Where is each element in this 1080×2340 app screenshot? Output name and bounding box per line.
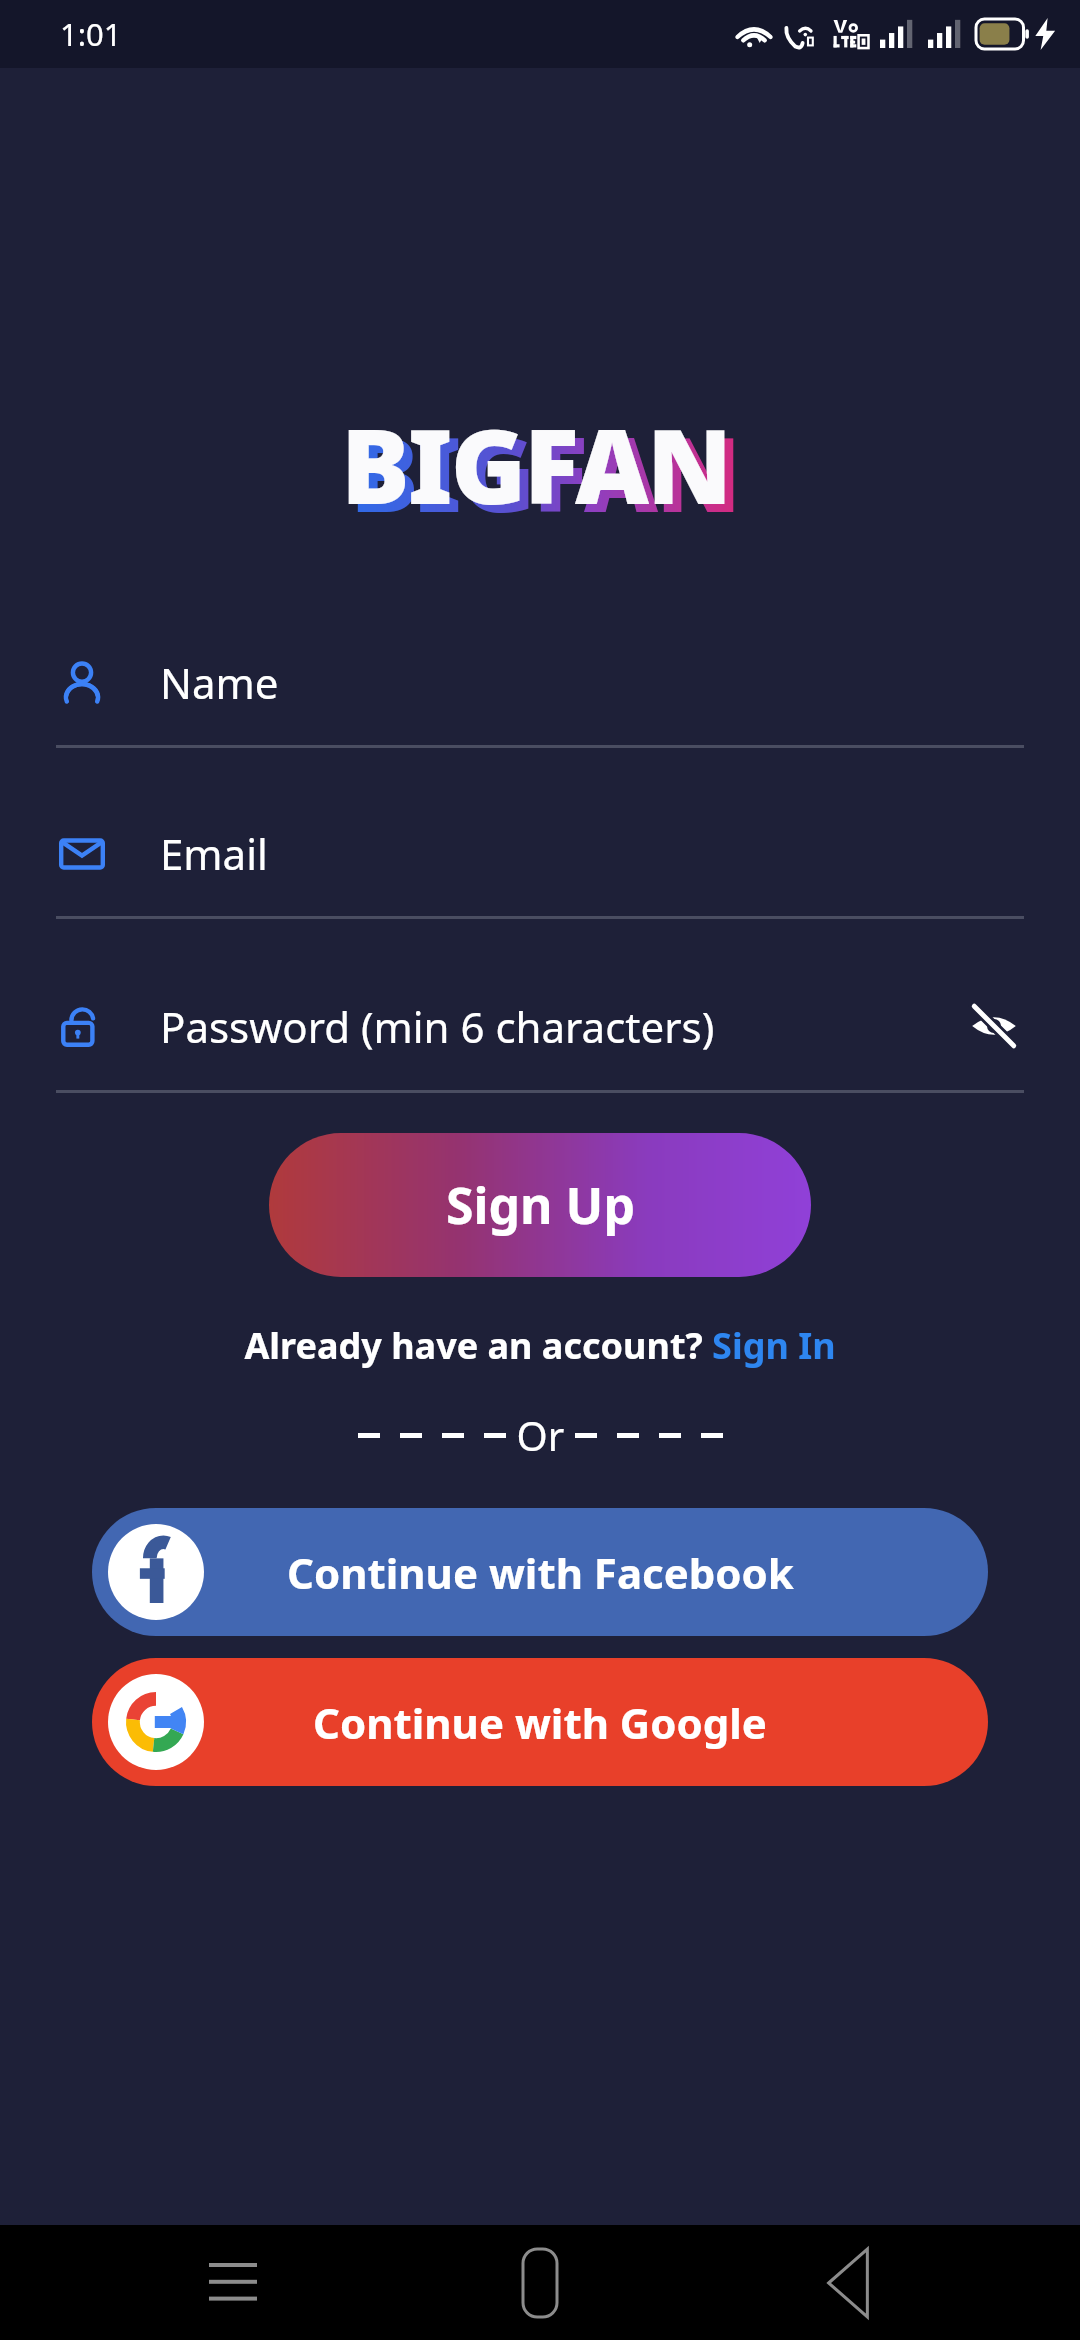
button[interactable]: Recents [158, 2225, 308, 2340]
button[interactable]: Continue with Facebook [92, 1508, 988, 1636]
staticText: BIGFAN [341, 395, 731, 534]
staticText: Email [160, 825, 268, 882]
staticText: 1:01 [60, 13, 122, 55]
button[interactable]: Home [465, 2225, 615, 2340]
button[interactable]: Password (min 6 characters) [0, 996, 1080, 1093]
staticText: Continue with Facebook [287, 1544, 794, 1601]
button[interactable]: Back [773, 2225, 923, 2340]
staticText: Continue with Google [313, 1694, 767, 1751]
staticText: Name [160, 654, 279, 711]
button[interactable]: Name [0, 654, 1080, 748]
staticText: Password (min 6 characters) [160, 998, 715, 1055]
button[interactable]: Email [0, 825, 1080, 919]
staticText: BIGFAN [350, 403, 740, 542]
button[interactable]: Sign Up [269, 1133, 811, 1277]
staticText: Sign Up [446, 1171, 635, 1239]
button[interactable]: Already have an account? Sign In [0, 1321, 1080, 1370]
button[interactable]: Show password [964, 996, 1024, 1056]
button[interactable]: Continue with Google [92, 1658, 988, 1786]
staticText: Already have an account? Sign In [244, 1321, 836, 1370]
staticText: Or [506, 1408, 575, 1462]
